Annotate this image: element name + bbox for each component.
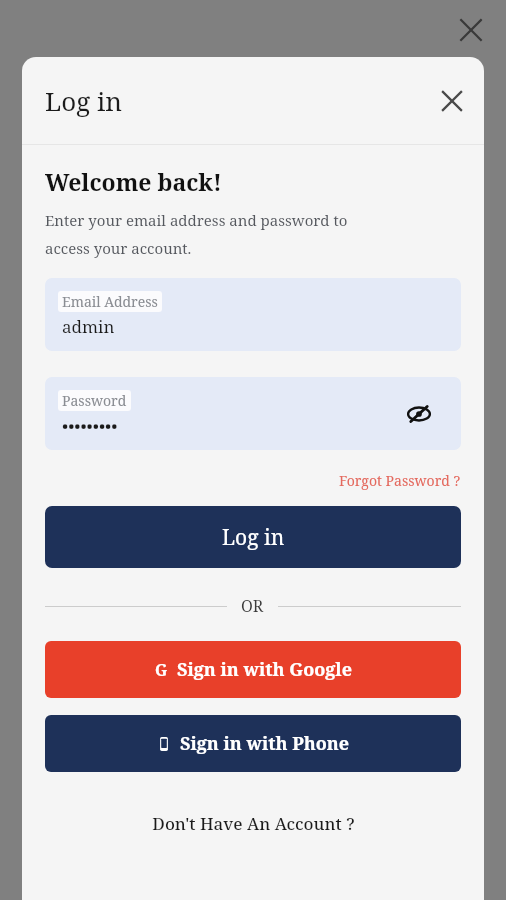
staticText: Sign in with Google — [177, 657, 352, 682]
staticText: Welcome back! — [45, 166, 222, 197]
staticText: Password — [62, 391, 127, 410]
button[interactable]: Close — [447, 6, 495, 54]
button[interactable]: Don't Have An Account ? — [148, 808, 359, 839]
staticText: OR — [241, 595, 264, 617]
staticText: Email Address — [62, 292, 158, 311]
staticText: G — [155, 659, 168, 681]
staticText: Forgot Password ? — [339, 471, 461, 490]
button[interactable]: G — [45, 641, 461, 698]
button[interactable]: Forgot Password ? — [337, 468, 463, 493]
button[interactable]: Email Address — [45, 278, 461, 351]
staticText: ••••••••• — [62, 414, 118, 437]
staticText: Don't Have An Account ? — [152, 812, 355, 835]
staticText: Log in — [45, 83, 123, 118]
staticText: Sign in with Phone — [180, 731, 350, 756]
staticText: Enter your email address and password to… — [45, 210, 348, 258]
button[interactable]: Close dialog — [428, 77, 476, 125]
staticText: admin — [62, 315, 115, 338]
button[interactable]: Sign in with Phone — [45, 715, 461, 772]
button[interactable]: Password — [45, 377, 461, 450]
button[interactable]: Show password — [399, 394, 439, 434]
button[interactable]: Log in — [45, 506, 461, 568]
staticText: Log in — [222, 523, 285, 552]
